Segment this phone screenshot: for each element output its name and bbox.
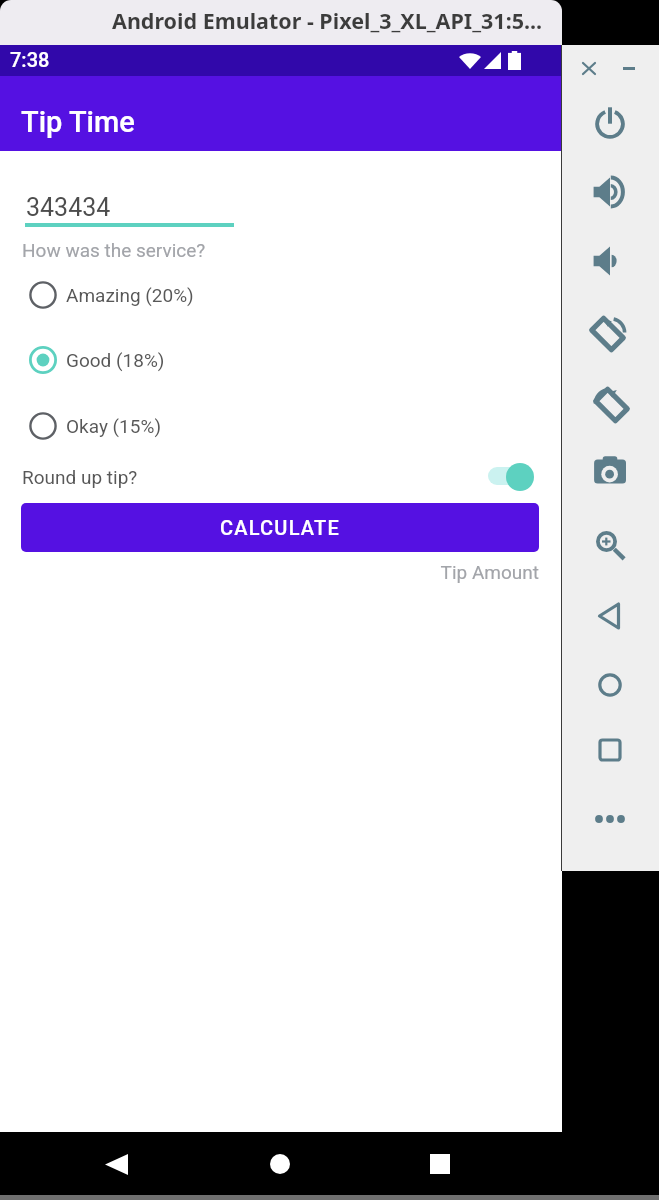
staticText: Round up tip? bbox=[22, 466, 138, 488]
button[interactable]: Good (18%) bbox=[0, 337, 562, 383]
button[interactable]: Take screenshot bbox=[573, 446, 647, 498]
button[interactable]: Volume up bbox=[573, 166, 647, 218]
button[interactable]: CALCULATE bbox=[21, 503, 539, 552]
button[interactable]: Okay (15%) bbox=[0, 403, 562, 449]
button[interactable]: Round up tip bbox=[487, 462, 535, 492]
staticText: CALCULATE bbox=[220, 516, 340, 539]
staticText: Good (18%) bbox=[66, 349, 165, 371]
staticText: How was the service? bbox=[22, 239, 206, 261]
staticText: Tip Time bbox=[21, 105, 135, 139]
staticText: Okay (15%) bbox=[66, 415, 161, 437]
staticText: Amazing (20%) bbox=[66, 284, 194, 306]
button[interactable]: Overview bbox=[573, 724, 647, 776]
button[interactable]: Back bbox=[93, 1141, 139, 1187]
button[interactable]: Home bbox=[573, 659, 647, 711]
staticText: 343434 bbox=[26, 193, 111, 222]
button[interactable]: Volume down bbox=[573, 235, 647, 287]
button[interactable]: Rotate right bbox=[573, 307, 647, 359]
button[interactable]: Amazing (20%) bbox=[0, 272, 562, 318]
button[interactable]: Zoom in bbox=[573, 519, 647, 571]
button[interactable]: More options bbox=[573, 793, 647, 845]
button[interactable]: Power bbox=[573, 98, 647, 150]
button[interactable]: Home bbox=[257, 1141, 303, 1187]
staticText: Tip Amount bbox=[0, 561, 539, 583]
button[interactable]: Back bbox=[573, 590, 647, 642]
staticText: Android Emulator - Pixel_3_XL_API_31:5..… bbox=[112, 6, 543, 35]
button[interactable]: Close bbox=[575, 54, 603, 82]
button[interactable]: Minimize bbox=[615, 54, 643, 82]
button[interactable]: Recent apps bbox=[417, 1141, 463, 1187]
button[interactable]: Rotate left bbox=[573, 378, 647, 430]
staticText: 7:38 bbox=[10, 48, 50, 71]
